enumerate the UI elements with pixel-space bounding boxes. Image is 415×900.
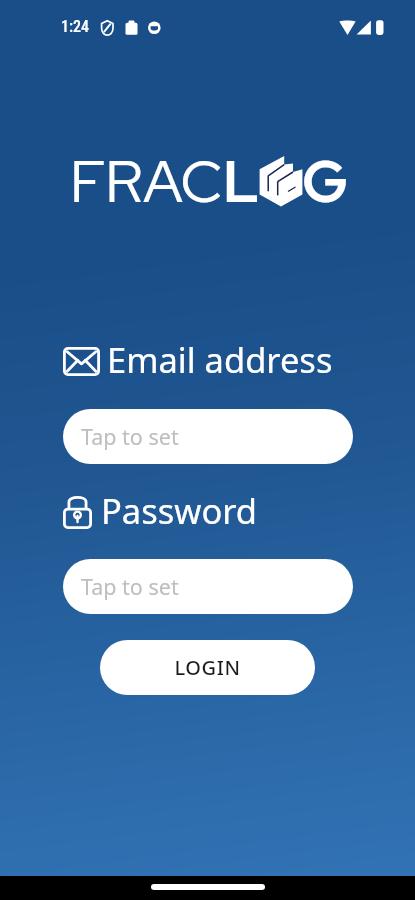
staticText: G <box>302 143 348 220</box>
button[interactable]: LOGIN <box>100 640 315 695</box>
staticText: Email address <box>107 336 333 383</box>
staticText: FRAC <box>70 143 223 220</box>
staticText: Password <box>101 487 258 534</box>
button[interactable]: Tap to set <box>63 409 353 464</box>
staticText: 1:24 <box>61 17 90 36</box>
staticText: LOGIN <box>174 654 241 681</box>
staticText: Tap to set <box>81 572 179 601</box>
button[interactable]: Tap to set <box>63 559 353 614</box>
staticText: Tap to set <box>81 422 179 451</box>
staticText: L <box>223 143 259 220</box>
